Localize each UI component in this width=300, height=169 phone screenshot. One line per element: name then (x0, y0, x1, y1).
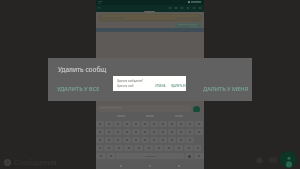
button[interactable]: Key (159, 121, 167, 127)
button[interactable]: Action (185, 5, 191, 11)
button[interactable]: Action (191, 5, 197, 11)
button[interactable]: ДАЛИТЬ У МЕНЯ (201, 84, 251, 94)
staticText: Удалить сообщение? (117, 79, 144, 83)
button[interactable]: Backspace (194, 145, 201, 151)
button[interactable]: Key (114, 129, 122, 135)
button[interactable]: Send (193, 106, 200, 113)
button[interactable]: Key (104, 145, 113, 151)
button[interactable]: Key (114, 137, 122, 143)
staticText: Сообщения (14, 157, 57, 167)
button[interactable]: Key (141, 129, 149, 135)
button[interactable]: Key (114, 121, 122, 127)
button[interactable]: Comma (107, 153, 115, 159)
button[interactable]: Key (177, 137, 185, 143)
button[interactable]: Enter (194, 153, 204, 159)
button[interactable]: Key (124, 145, 133, 151)
button[interactable]: Key (150, 137, 158, 143)
button[interactable]: Key (168, 137, 176, 143)
button[interactable]: ОТМЕНА (155, 84, 166, 87)
button[interactable]: Key (186, 137, 194, 143)
button[interactable]: Action (179, 5, 185, 11)
button[interactable]: Key (141, 137, 149, 143)
button[interactable]: Key (164, 145, 173, 151)
button[interactable]: Shift (96, 145, 103, 151)
button[interactable]: Key (186, 129, 194, 135)
staticText: ОТМЕНА (155, 84, 166, 87)
button[interactable]: Key (132, 137, 140, 143)
button[interactable]: Key (123, 121, 131, 127)
staticText: УДАЛИТЬ ВСЕ (171, 84, 188, 87)
button[interactable]: Key (96, 121, 104, 127)
button[interactable]: Key (105, 121, 113, 127)
button[interactable]: Key (114, 145, 123, 151)
button[interactable]: Back (97, 6, 101, 10)
staticText: ДАЛИТЬ У МЕНЯ (203, 85, 249, 93)
button[interactable]: Сообщения (4, 157, 57, 167)
staticText: УДАЛИТЬ У ВСЕ (57, 85, 100, 93)
button[interactable]: Key (168, 121, 176, 127)
button[interactable]: Key (132, 121, 140, 127)
button[interactable]: Symbols (96, 153, 106, 159)
button[interactable]: Key (141, 121, 149, 127)
button[interactable]: Back (117, 162, 125, 169)
button[interactable]: Action (167, 5, 173, 11)
button[interactable]: Back (252, 153, 266, 167)
button[interactable]: Key (132, 129, 140, 135)
button[interactable]: Key (168, 129, 176, 135)
staticText: Удалить сооб (117, 84, 134, 88)
button[interactable]: Key (159, 129, 167, 135)
staticText: Удалить сообщ (58, 65, 107, 74)
button[interactable]: Key (96, 129, 104, 135)
button[interactable]: Key (186, 121, 194, 127)
button[interactable]: Key (123, 129, 131, 135)
button[interactable]: Key (144, 145, 153, 151)
button[interactable]: Key (154, 145, 163, 151)
button[interactable]: Key (195, 121, 203, 127)
button[interactable]: Key (195, 129, 203, 135)
button[interactable]: Key (177, 129, 185, 135)
button[interactable]: Voice input (185, 153, 193, 159)
button[interactable]: Key (184, 145, 193, 151)
button[interactable]: Profile (280, 151, 297, 168)
button[interactable]: УДАЛИТЬ ВСЕ (171, 84, 188, 87)
button[interactable]: Key (159, 137, 167, 143)
button[interactable]: УДАЛИТЬ У ВСЕ (55, 84, 102, 94)
button[interactable]: Recents (175, 162, 183, 169)
button[interactable]: Key (150, 129, 158, 135)
button[interactable]: Action (173, 5, 179, 11)
button[interactable]: Action (197, 5, 203, 11)
button[interactable]: Home (146, 162, 154, 169)
button[interactable]: Удалить сообщение? (113, 76, 186, 91)
button[interactable]: Удалить сообщ (48, 58, 252, 101)
button[interactable]: Key (105, 137, 113, 143)
button[interactable]: Key (123, 137, 131, 143)
button[interactable]: Key (150, 121, 158, 127)
button[interactable]: Key (134, 145, 143, 151)
button[interactable]: Key (96, 137, 104, 143)
button[interactable]: Key (174, 145, 183, 151)
button[interactable]: Key (105, 129, 113, 135)
button[interactable]: Key (177, 121, 185, 127)
